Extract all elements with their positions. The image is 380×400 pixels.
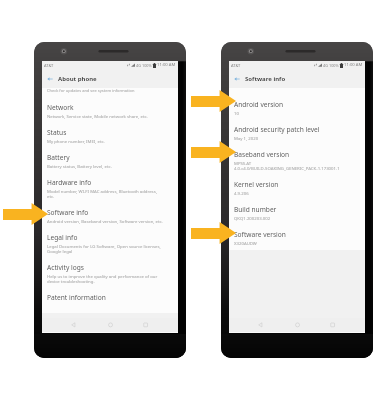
other: Back — [233, 75, 241, 83]
button[interactable]: Patent information — [42, 288, 178, 306]
staticText: Battery status, Battery level, etc. — [47, 163, 112, 169]
staticText: Network, Service state, Mobile network s… — [47, 113, 148, 119]
button[interactable]: Hardware info — [42, 173, 178, 203]
button[interactable]: Network — [42, 98, 178, 123]
staticText: 100% — [142, 63, 152, 68]
staticText: AT&T — [44, 63, 54, 68]
staticText: My phone number, IMEI, etc. — [47, 138, 105, 144]
staticText: Help us to improve the quality and perfo… — [47, 273, 158, 284]
staticText: 4.9.206 — [234, 190, 249, 196]
staticText: Network — [47, 103, 74, 112]
staticText: X320AUDW — [234, 240, 257, 246]
button[interactable]: Legal info — [42, 228, 178, 258]
staticText: 11:00 AM — [344, 62, 363, 68]
staticText: May 1, 2020 — [234, 135, 259, 141]
button[interactable]: Android version — [229, 95, 365, 120]
staticText: Software info — [47, 208, 89, 217]
button[interactable]: Back — [229, 69, 365, 88]
button[interactable]: Kernel version — [229, 175, 365, 200]
button[interactable]: Build number — [229, 200, 365, 225]
staticText: About phone — [58, 75, 97, 83]
staticText: Software info — [245, 75, 286, 83]
staticText: Model number, WI-FI MAC address, Bluetoo… — [47, 188, 157, 199]
staticText: MPSS.AT 4.0.c4.0/BUILD-SOAKING_GENERIC_P… — [234, 160, 340, 171]
staticText: Kernel version — [234, 180, 279, 189]
staticText: 4G — [323, 63, 328, 68]
staticText: 10 — [234, 110, 239, 116]
staticText: Android security patch level — [234, 125, 320, 134]
button[interactable]: Battery — [42, 148, 178, 173]
other: Back — [46, 75, 54, 83]
staticText: Check for updates and see system informa… — [47, 88, 135, 93]
staticText: 4G — [136, 63, 141, 68]
staticText: Patent information — [47, 293, 106, 302]
staticText: Software version — [234, 230, 286, 239]
staticText: AT&T — [231, 63, 241, 68]
button[interactable]: Baseband version — [229, 145, 365, 175]
button[interactable]: Activity logs — [42, 258, 178, 288]
staticText: 100% — [329, 63, 339, 68]
staticText: Legal Documents for LG Software, Open so… — [47, 243, 161, 254]
staticText: Android version, Baseband version, Softw… — [47, 218, 163, 224]
staticText: Android version — [234, 100, 284, 109]
button[interactable]: Software version — [229, 225, 365, 250]
staticText: Baseband version — [234, 150, 290, 159]
staticText: Hardware info — [47, 178, 92, 187]
button[interactable]: Android security patch level — [229, 120, 365, 145]
staticText: Legal info — [47, 233, 78, 242]
staticText: 11:00 AM — [157, 62, 176, 68]
staticText: QKQ1.200203.002 — [234, 215, 271, 221]
button[interactable]: Software info — [42, 203, 178, 228]
staticText: Build number — [234, 205, 277, 214]
staticText: Battery — [47, 153, 70, 162]
staticText: Status — [47, 128, 67, 137]
staticText: Activity logs — [47, 263, 84, 272]
button[interactable]: Status — [42, 123, 178, 148]
button[interactable]: Back — [42, 69, 178, 88]
